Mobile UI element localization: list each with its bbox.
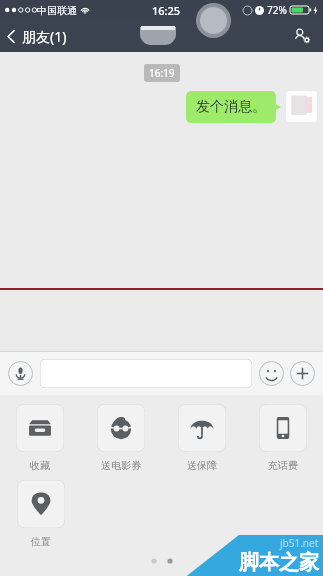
staticText: 16:25 [152,3,181,18]
button[interactable]: Avatar [286,91,317,122]
staticText: jb51.net [280,536,319,550]
button[interactable]: 送保障 [161,404,242,472]
button[interactable]: 充话费 [242,404,323,472]
staticText: 脚本之家 [239,550,319,575]
button[interactable]: 收藏 [0,404,80,472]
staticText: 送保障 [187,459,217,472]
staticText: 充话费 [268,459,298,472]
button[interactable]: 朋友(1) [0,23,75,50]
staticText: 72% [267,3,287,17]
staticText: 收藏 [30,459,50,472]
button[interactable]: Chat settings [289,23,315,49]
staticText: 朋友(1) [22,27,67,46]
staticText: 发个消息。 [196,98,266,116]
staticText: 16:19 [149,66,175,80]
button[interactable]: 位置 [0,480,81,548]
staticText: 中国联通 [37,4,77,17]
button[interactable]: 送电影券 [80,404,161,472]
button[interactable]: 发个消息。 [186,91,276,123]
button[interactable]: Voice message [7,360,34,387]
button[interactable]: Emoji [258,360,285,387]
staticText: 位置 [31,535,51,548]
button[interactable] [40,359,252,388]
button[interactable]: More options [289,360,316,387]
staticText: 送电影券 [101,459,141,472]
